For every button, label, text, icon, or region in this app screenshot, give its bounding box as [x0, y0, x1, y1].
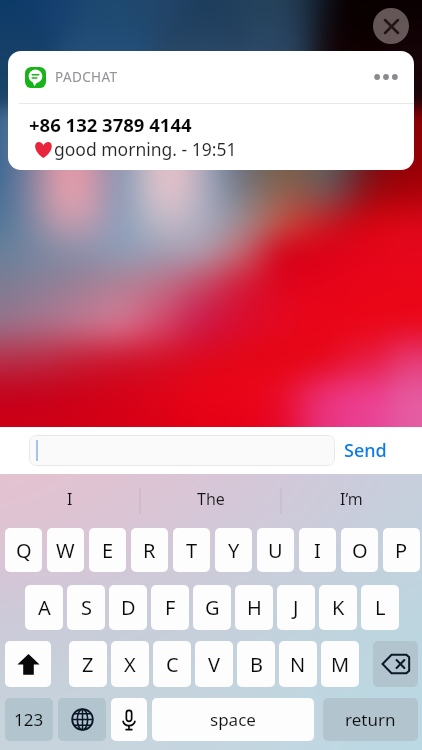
button[interactable]: W: [47, 528, 84, 572]
staticText: return: [345, 708, 396, 731]
button[interactable]: X: [111, 641, 149, 687]
staticText: I: [67, 488, 73, 510]
staticText: V: [208, 651, 220, 678]
button[interactable]: C: [153, 641, 191, 687]
button[interactable]: O: [341, 528, 378, 572]
button[interactable]: R: [131, 528, 168, 572]
button[interactable]: L: [361, 585, 399, 630]
staticText: Q: [16, 537, 32, 564]
button[interactable]: More options: [370, 61, 402, 93]
staticText: F: [165, 594, 176, 621]
staticText: N: [290, 651, 306, 678]
staticText: X: [124, 651, 136, 678]
button[interactable]: U: [257, 528, 294, 572]
button[interactable]: S: [67, 585, 105, 630]
staticText: I: [314, 537, 321, 564]
staticText: C: [166, 651, 179, 678]
staticText: S: [81, 594, 92, 621]
button[interactable]: T: [173, 528, 210, 572]
staticText: Y: [228, 537, 240, 564]
staticText: J: [293, 594, 299, 621]
button[interactable]: E: [89, 528, 126, 572]
staticText: G: [205, 594, 220, 621]
button[interactable]: F: [151, 585, 189, 630]
staticText: Z: [82, 651, 94, 678]
staticText: D: [121, 594, 136, 621]
button[interactable]: K: [319, 585, 357, 630]
button[interactable]: Close: [373, 8, 409, 44]
staticText: 123: [14, 708, 44, 731]
staticText: A: [38, 594, 51, 621]
staticText: space: [210, 708, 256, 731]
button[interactable]: I’m: [281, 474, 422, 524]
button[interactable]: Shift: [5, 641, 51, 687]
button[interactable]: N: [279, 641, 317, 687]
button[interactable]: D: [109, 585, 147, 630]
staticText: R: [143, 537, 156, 564]
staticText: K: [332, 594, 345, 621]
button[interactable]: The: [140, 474, 281, 524]
button[interactable]: [29, 435, 335, 466]
button[interactable]: Dictate: [111, 698, 147, 741]
staticText: H: [247, 594, 262, 621]
button[interactable]: Z: [69, 641, 107, 687]
staticText: E: [102, 537, 114, 564]
staticText: The: [197, 488, 225, 510]
button[interactable]: M: [321, 641, 359, 687]
staticText: PADCHAT: [55, 68, 118, 86]
staticText: M: [331, 651, 350, 678]
button[interactable]: I: [0, 474, 140, 524]
staticText: T: [186, 537, 198, 564]
staticText: O: [352, 537, 368, 564]
button[interactable]: H: [235, 585, 273, 630]
button[interactable]: Q: [5, 528, 42, 572]
button[interactable]: Send: [344, 438, 387, 463]
button[interactable]: P: [383, 528, 420, 572]
staticText: Send: [344, 438, 387, 463]
button[interactable]: V: [195, 641, 233, 687]
button[interactable]: Next keyboard: [58, 698, 106, 741]
staticText: good morning. - 19:51: [54, 137, 237, 161]
button[interactable]: A: [25, 585, 63, 630]
button[interactable]: space: [152, 698, 314, 741]
button[interactable]: J: [277, 585, 315, 630]
staticText: U: [268, 537, 283, 564]
button[interactable]: G: [193, 585, 231, 630]
staticText: B: [250, 651, 263, 678]
button[interactable]: Y: [215, 528, 252, 572]
staticText: W: [56, 537, 75, 564]
button[interactable]: 123: [5, 698, 53, 741]
button[interactable]: B: [237, 641, 275, 687]
button[interactable]: Backspace: [373, 641, 418, 687]
staticText: L: [375, 594, 386, 621]
staticText: I’m: [340, 488, 363, 510]
staticText: +86 132 3789 4144: [29, 112, 192, 137]
button[interactable]: return: [323, 698, 418, 741]
staticText: P: [395, 537, 408, 564]
button[interactable]: I: [299, 528, 336, 572]
button[interactable]: PADCHAT: [8, 51, 414, 170]
